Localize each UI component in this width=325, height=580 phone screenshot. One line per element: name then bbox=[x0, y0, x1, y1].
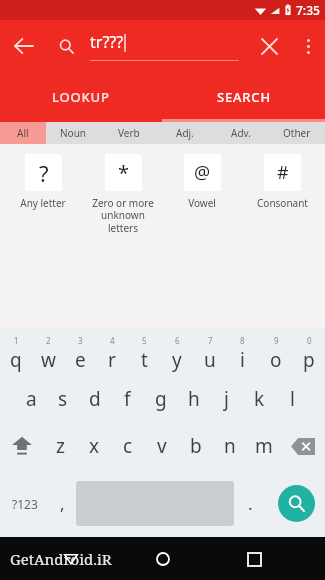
button[interactable]: ? bbox=[7, 154, 79, 210]
button[interactable]: Search bbox=[48, 28, 84, 64]
staticText: q bbox=[10, 347, 22, 373]
button[interactable]: 6 bbox=[160, 332, 193, 376]
staticText: k bbox=[254, 386, 265, 412]
button[interactable]: Other bbox=[269, 122, 325, 144]
staticText: n bbox=[224, 433, 236, 459]
button[interactable]: 3 bbox=[64, 332, 96, 376]
button[interactable]: Adj. bbox=[157, 122, 213, 144]
staticText: 9 bbox=[274, 335, 279, 346]
staticText: GetAndroid.iR bbox=[10, 549, 112, 569]
button[interactable]: 4 bbox=[96, 332, 128, 376]
button[interactable]: Recent apps bbox=[234, 539, 274, 579]
button[interactable]: a bbox=[15, 376, 47, 422]
button[interactable]: @ bbox=[166, 154, 238, 210]
button[interactable]: 7 bbox=[193, 332, 226, 376]
button[interactable]: c bbox=[111, 422, 145, 470]
staticText: e bbox=[75, 347, 86, 373]
button[interactable]: Back bbox=[51, 539, 91, 579]
button[interactable]: k bbox=[243, 376, 276, 422]
button[interactable]: Back bbox=[0, 22, 48, 70]
staticText: 2 bbox=[46, 335, 51, 346]
button[interactable]: ?123 bbox=[0, 470, 49, 537]
staticText: Other bbox=[283, 126, 311, 140]
staticText: s bbox=[58, 386, 68, 412]
button[interactable]: 1 bbox=[0, 332, 32, 376]
staticText: All bbox=[17, 126, 29, 140]
staticText: Zero or more unknown letters bbox=[92, 196, 154, 235]
staticText: Adv. bbox=[231, 126, 251, 140]
staticText: 8 bbox=[240, 335, 245, 346]
button[interactable]: n bbox=[213, 422, 247, 470]
button[interactable]: LOOKUP bbox=[0, 72, 162, 122]
staticText: 3 bbox=[78, 335, 83, 346]
staticText: @ bbox=[194, 160, 211, 185]
button[interactable]: * bbox=[87, 154, 159, 235]
staticText: ?123 bbox=[12, 496, 38, 512]
staticText: 4 bbox=[110, 335, 115, 346]
button[interactable]: , bbox=[49, 470, 76, 537]
staticText: j bbox=[224, 386, 229, 412]
staticText: 5 bbox=[142, 335, 147, 346]
staticText: r bbox=[108, 347, 116, 373]
button[interactable]: More options bbox=[291, 29, 325, 63]
staticText: l bbox=[290, 386, 295, 412]
button[interactable]: # bbox=[246, 154, 318, 210]
staticText: tr??? bbox=[90, 31, 124, 53]
button[interactable]: b bbox=[179, 422, 213, 470]
button[interactable]: m bbox=[247, 422, 281, 470]
staticText: Adj. bbox=[176, 126, 194, 140]
staticText: LOOKUP bbox=[52, 88, 110, 106]
button[interactable]: Shift bbox=[0, 422, 43, 470]
staticText: v bbox=[157, 433, 167, 459]
button[interactable]: l bbox=[276, 376, 309, 422]
button[interactable]: All bbox=[0, 122, 46, 144]
button[interactable]: g bbox=[144, 376, 177, 422]
button[interactable]: Backspace bbox=[281, 422, 325, 470]
staticText: 6 bbox=[175, 335, 180, 346]
button[interactable]: f bbox=[111, 376, 144, 422]
staticText: i bbox=[240, 347, 245, 373]
staticText: 7:35 bbox=[296, 2, 320, 18]
staticText: Vowel bbox=[188, 196, 216, 210]
button[interactable]: 5 bbox=[128, 332, 160, 376]
button[interactable]: 8 bbox=[226, 332, 259, 376]
staticText: p bbox=[303, 347, 315, 373]
staticText: z bbox=[56, 433, 65, 459]
staticText: 7 bbox=[208, 335, 213, 346]
button[interactable]: j bbox=[210, 376, 243, 422]
button[interactable]: Home bbox=[143, 539, 183, 579]
staticText: y bbox=[172, 347, 182, 373]
button[interactable]: Verb bbox=[101, 122, 157, 144]
staticText: t bbox=[141, 347, 148, 373]
staticText: u bbox=[204, 347, 216, 373]
staticText: c bbox=[123, 433, 133, 459]
button[interactable]: 0 bbox=[292, 332, 325, 376]
button[interactable]: h bbox=[177, 376, 210, 422]
staticText: SEARCH bbox=[217, 88, 271, 106]
staticText: ? bbox=[39, 158, 49, 188]
staticText: 1 bbox=[14, 335, 19, 346]
staticText: o bbox=[270, 347, 282, 373]
staticText: x bbox=[89, 433, 100, 459]
button[interactable]: SEARCH bbox=[162, 72, 325, 122]
staticText: a bbox=[26, 386, 37, 412]
button[interactable]: v bbox=[145, 422, 179, 470]
staticText: w bbox=[41, 347, 56, 373]
button[interactable]: . bbox=[234, 470, 267, 537]
button[interactable]: Search bbox=[278, 485, 315, 522]
staticText: h bbox=[188, 386, 200, 412]
staticText: 0 bbox=[307, 335, 312, 346]
staticText: d bbox=[89, 386, 101, 412]
button[interactable]: x bbox=[77, 422, 111, 470]
button[interactable]: Noun bbox=[46, 122, 101, 144]
button[interactable]: s bbox=[47, 376, 79, 422]
staticText: f bbox=[124, 386, 131, 412]
button[interactable]: z bbox=[43, 422, 77, 470]
button[interactable]: d bbox=[79, 376, 111, 422]
staticText: b bbox=[190, 433, 202, 459]
button[interactable]: 2 bbox=[32, 332, 64, 376]
button[interactable]: 9 bbox=[259, 332, 292, 376]
button[interactable]: Adv. bbox=[213, 122, 269, 144]
button[interactable]: Clear bbox=[247, 24, 291, 68]
